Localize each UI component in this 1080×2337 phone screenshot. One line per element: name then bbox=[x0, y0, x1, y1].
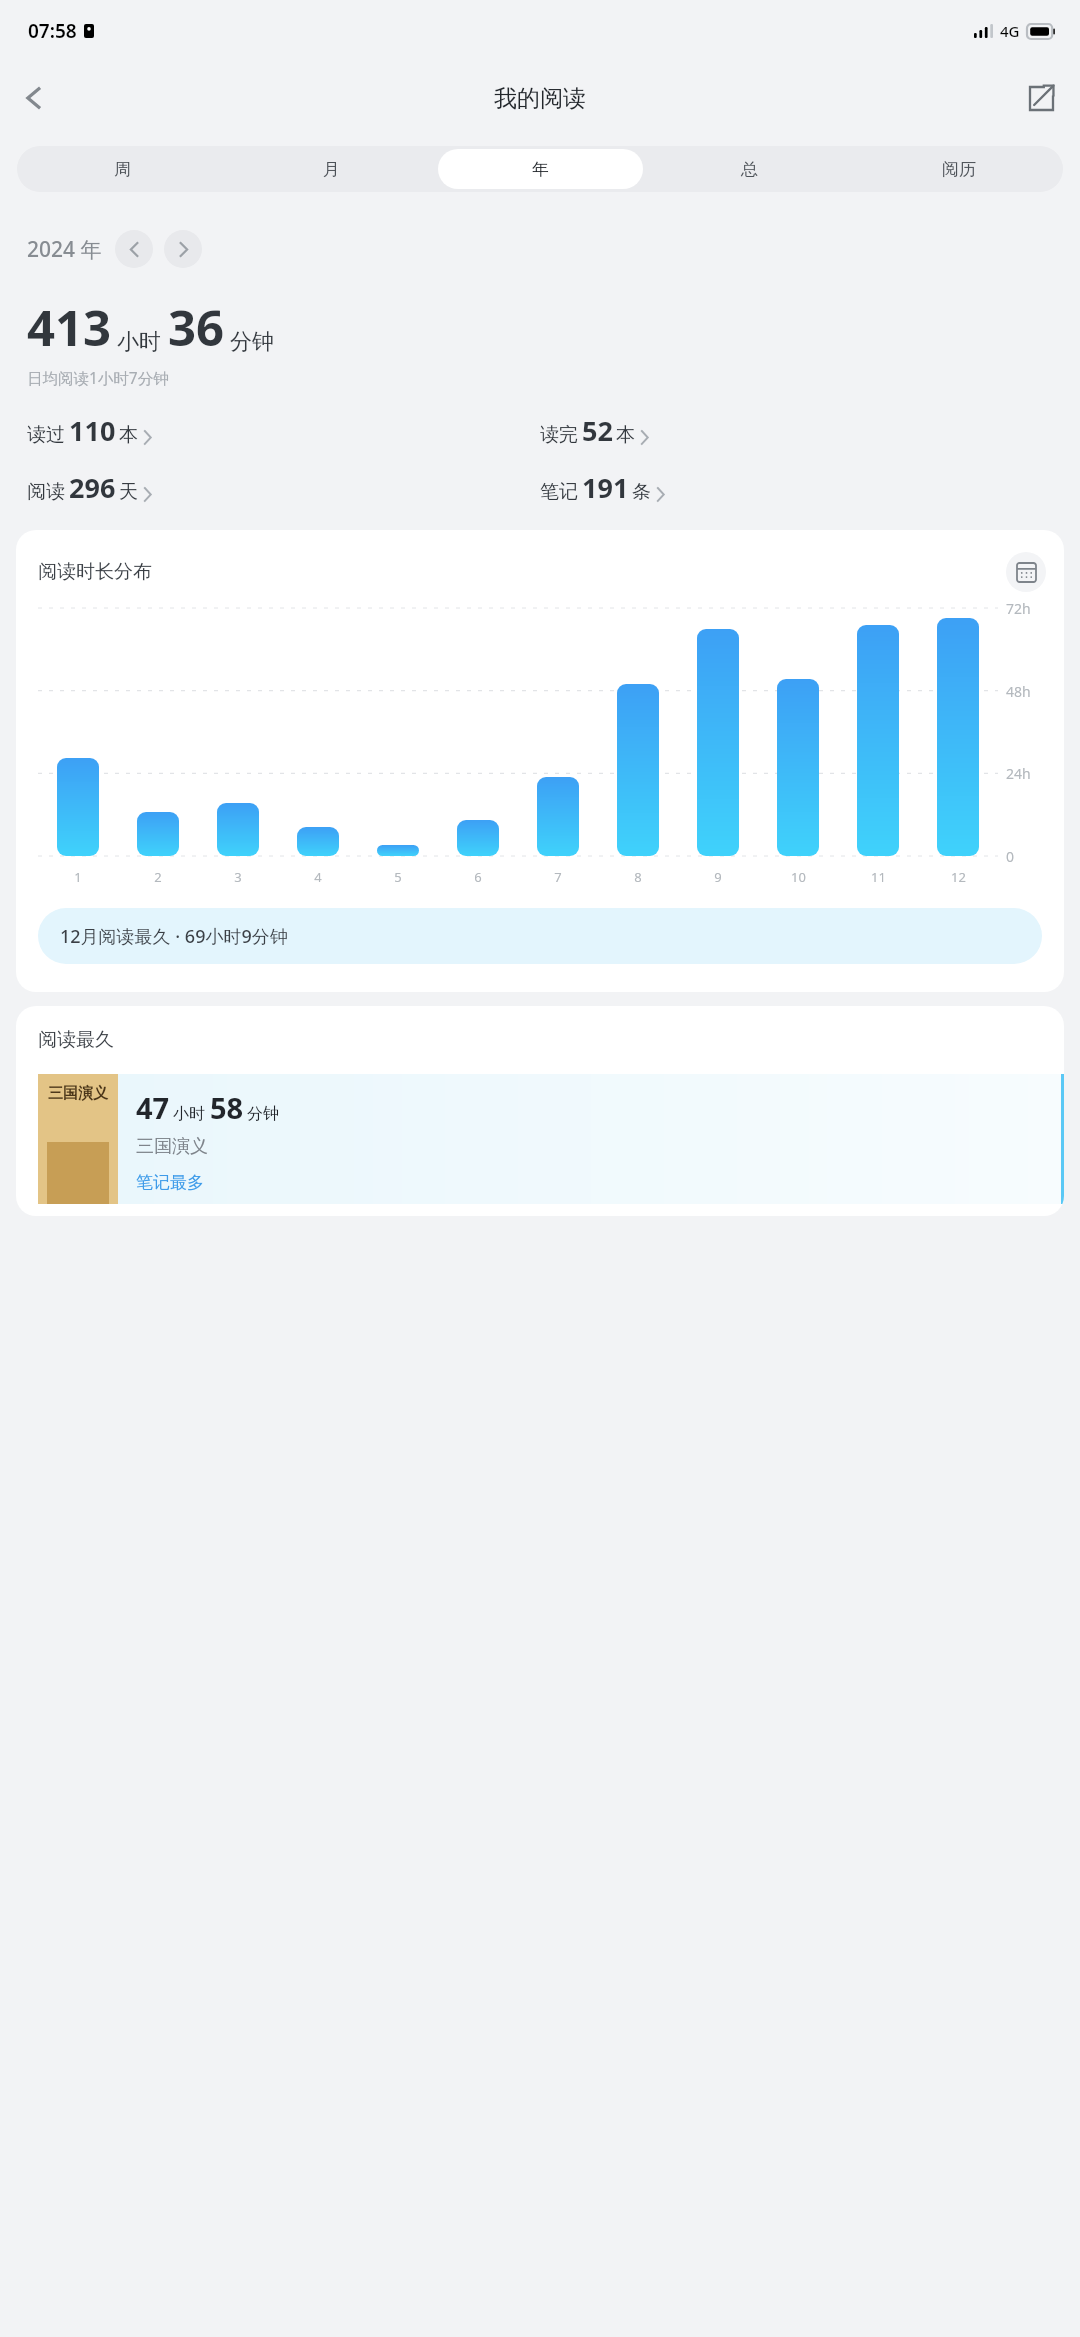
staticText: 110 bbox=[69, 412, 116, 449]
staticText: 笔记最多 bbox=[136, 1172, 204, 1193]
button[interactable]: 周 bbox=[19, 149, 225, 189]
staticText: 读完 bbox=[540, 423, 578, 447]
staticText: 月 bbox=[323, 159, 340, 180]
staticText: 阅读时长分布 bbox=[38, 560, 152, 584]
staticText: 8 bbox=[634, 868, 642, 886]
staticText: 年 bbox=[532, 159, 549, 180]
button[interactable]: 笔记 bbox=[540, 469, 1053, 506]
staticText: 周 bbox=[114, 159, 131, 180]
staticText: 分钟 bbox=[247, 1104, 279, 1124]
staticText: 笔记 bbox=[540, 480, 578, 504]
staticText: 2024 年 bbox=[27, 235, 102, 264]
button[interactable]: Back bbox=[8, 72, 60, 124]
staticText: 52 bbox=[582, 412, 613, 449]
button[interactable]: 读过 bbox=[27, 412, 540, 449]
staticText: 24h bbox=[1006, 764, 1031, 783]
staticText: 413 bbox=[27, 294, 112, 361]
staticText: 阅读最久 bbox=[38, 1028, 114, 1052]
button[interactable]: 三国演义 bbox=[38, 1074, 1064, 1204]
staticText: 2 bbox=[154, 868, 162, 886]
staticText: 4 bbox=[314, 868, 322, 886]
staticText: 12 bbox=[951, 868, 966, 886]
staticText: 读过 bbox=[27, 423, 65, 447]
staticText: 6 bbox=[474, 868, 482, 886]
staticText: 条 bbox=[632, 480, 651, 504]
staticText: 总 bbox=[741, 159, 758, 180]
staticText: 12月阅读最久 · 69小时9分钟 bbox=[60, 924, 288, 949]
button[interactable]: 12月阅读最久 · 69小时9分钟 bbox=[38, 908, 1042, 964]
staticText: 5 bbox=[394, 868, 402, 886]
staticText: 阅历 bbox=[942, 159, 976, 180]
button[interactable]: Next year bbox=[164, 230, 202, 268]
staticText: 本 bbox=[616, 423, 635, 447]
staticText: 48h bbox=[1006, 682, 1031, 701]
staticText: 日均阅读1小时7分钟 bbox=[27, 367, 169, 388]
staticText: 三国演义 bbox=[136, 1135, 208, 1158]
button[interactable]: 年 bbox=[438, 149, 643, 189]
staticText: 4G bbox=[1000, 21, 1020, 41]
staticText: 7 bbox=[554, 868, 562, 886]
staticText: 阅读 bbox=[27, 480, 65, 504]
staticText: 3 bbox=[234, 868, 242, 886]
staticText: 三国演义 bbox=[48, 1084, 108, 1103]
staticText: 1 bbox=[74, 868, 82, 886]
button[interactable]: 月 bbox=[229, 149, 434, 189]
button[interactable]: Calendar bbox=[1006, 552, 1046, 592]
staticText: 0 bbox=[1006, 847, 1015, 866]
staticText: 296 bbox=[69, 469, 116, 506]
button[interactable]: 阅历 bbox=[856, 149, 1061, 189]
staticText: 11 bbox=[871, 868, 886, 886]
staticText: 47 bbox=[136, 1088, 170, 1127]
staticText: 07:58 bbox=[28, 18, 77, 44]
button[interactable]: Share bbox=[1016, 73, 1066, 123]
button[interactable]: 阅读 bbox=[27, 469, 540, 506]
button[interactable]: 总 bbox=[647, 149, 852, 189]
staticText: 本 bbox=[119, 423, 138, 447]
staticText: 72h bbox=[1006, 599, 1031, 618]
staticText: 小时 bbox=[173, 1104, 205, 1124]
button[interactable]: 读完 bbox=[540, 412, 1053, 449]
staticText: 191 bbox=[582, 469, 629, 506]
staticText: 我的阅读 bbox=[494, 84, 586, 113]
staticText: 10 bbox=[791, 868, 806, 886]
staticText: 分钟 bbox=[230, 328, 274, 356]
staticText: 9 bbox=[714, 868, 722, 886]
staticText: 58 bbox=[210, 1088, 244, 1127]
staticText: 小时 bbox=[117, 328, 161, 356]
button[interactable]: Previous year bbox=[115, 230, 153, 268]
staticText: 36 bbox=[168, 294, 225, 361]
staticText: 天 bbox=[119, 480, 138, 504]
